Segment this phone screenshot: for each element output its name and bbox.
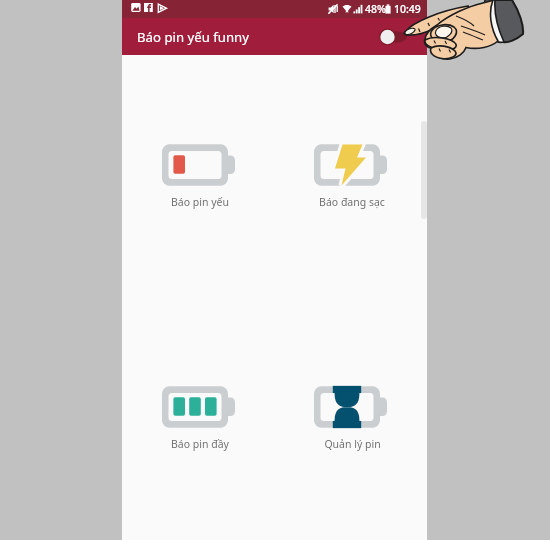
staticText: Báo đang sạc xyxy=(319,195,385,209)
button[interactable]: Toggle alert xyxy=(372,18,412,55)
staticText: Báo pin đầy xyxy=(171,437,229,451)
staticText: 10:49 xyxy=(394,2,421,16)
button[interactable]: Báo đang sạc xyxy=(292,130,412,205)
staticText: Báo pin yếu xyxy=(171,195,229,209)
staticText: Báo pin yếu funny xyxy=(137,28,249,46)
button[interactable]: Báo pin đầy xyxy=(140,372,260,447)
button[interactable]: Báo pin yếu xyxy=(140,130,260,205)
staticText: 48% xyxy=(365,2,386,16)
button[interactable]: Quản lý pin xyxy=(292,372,412,447)
staticText: Quản lý pin xyxy=(324,437,381,451)
